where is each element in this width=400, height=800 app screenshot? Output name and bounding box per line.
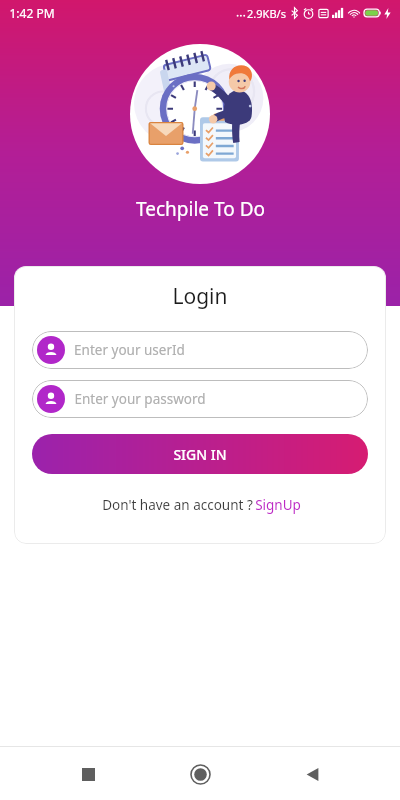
staticText: 1:42 PM <box>9 5 55 21</box>
button[interactable]: SIGN IN <box>32 434 368 474</box>
staticText: Techpile To Do <box>136 196 265 222</box>
button[interactable]: Recent apps <box>64 750 112 798</box>
button[interactable]: Don't have an account ? <box>96 492 305 518</box>
button[interactable]: Enter your password <box>32 380 368 418</box>
staticText: Don't have an account ? <box>100 496 255 514</box>
staticText: SIGN IN <box>173 445 227 464</box>
staticText: Enter your password <box>74 390 206 408</box>
button[interactable]: Enter your userId <box>32 331 368 369</box>
staticText: SignUp <box>255 496 301 514</box>
staticText: 2.9KB/s <box>247 6 286 21</box>
button[interactable]: Home <box>176 750 224 798</box>
staticText: Login <box>172 282 228 311</box>
staticText: Enter your userId <box>74 341 185 359</box>
button[interactable]: Back <box>288 750 336 798</box>
